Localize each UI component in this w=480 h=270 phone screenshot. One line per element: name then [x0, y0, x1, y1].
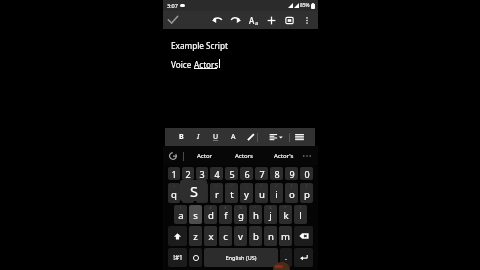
staticText: r: [215, 188, 219, 201]
button[interactable]: @: [189, 205, 202, 224]
staticText: %: [239, 205, 243, 211]
staticText: English (US): [225, 254, 257, 262]
button[interactable]: ^: [249, 205, 262, 224]
button[interactable]: n: [264, 226, 277, 246]
button[interactable]: 5: [225, 167, 238, 180]
staticText: b: [253, 230, 259, 243]
button[interactable]: _: [240, 183, 253, 203]
button[interactable]: x: [204, 226, 217, 246]
staticText: p: [304, 188, 310, 201]
staticText: =: [215, 183, 218, 189]
button[interactable]: z: [189, 226, 202, 246]
staticText: g: [238, 209, 244, 222]
button[interactable]: &: [264, 205, 277, 224]
button[interactable]: Add: [265, 14, 278, 27]
staticText: A: [249, 15, 255, 26]
staticText: B: [179, 132, 184, 142]
button[interactable]: Bullet list: [294, 131, 305, 143]
staticText: d: [208, 209, 214, 222]
staticText: 0: [304, 168, 310, 180]
staticText: f: [224, 209, 228, 222]
staticText: *: [284, 205, 287, 211]
button[interactable]: /: [225, 183, 238, 203]
button[interactable]: U: [210, 130, 221, 144]
button[interactable]: $: [219, 205, 232, 224]
button[interactable]: 9: [285, 167, 298, 180]
button[interactable]: Save: [166, 13, 180, 27]
button[interactable]: More suggestions: [300, 146, 314, 166]
button[interactable]: !: [174, 205, 187, 224]
button[interactable]: m: [279, 226, 292, 246]
staticText: o: [289, 188, 295, 201]
button[interactable]: Google: [163, 146, 183, 166]
button[interactable]: Redo: [229, 14, 242, 27]
button[interactable]: Enter: [294, 248, 313, 267]
button[interactable]: 2: [182, 167, 194, 180]
button[interactable]: Actors: [224, 146, 264, 166]
button[interactable]: ×: [182, 183, 194, 203]
staticText: Actors: [194, 59, 219, 70]
button[interactable]: I: [193, 130, 204, 144]
button[interactable]: 7: [255, 167, 268, 180]
button[interactable]: 1: [168, 167, 180, 180]
button[interactable]: >: [270, 183, 283, 203]
staticText: t: [230, 188, 234, 201]
button[interactable]: More options: [302, 14, 312, 27]
button[interactable]: b: [249, 226, 262, 246]
staticText: 9: [289, 168, 295, 180]
staticText: u: [259, 188, 265, 201]
button[interactable]: 4: [210, 167, 223, 180]
button[interactable]: B: [176, 130, 187, 144]
button[interactable]: 8: [270, 167, 283, 180]
button[interactable]: Insert image: [283, 14, 296, 27]
staticText: i: [275, 188, 278, 201]
staticText: a: [178, 209, 184, 222]
button[interactable]: A: [228, 130, 239, 144]
staticText: k: [283, 209, 289, 222]
button[interactable]: Paragraph style: [269, 131, 284, 143]
button[interactable]: c: [219, 226, 232, 246]
button[interactable]: #: [204, 205, 217, 224]
staticText: ]: [306, 183, 308, 189]
staticText: U: [213, 132, 219, 142]
staticText: 85%: [300, 2, 310, 9]
button[interactable]: Backspace: [294, 226, 313, 246]
button[interactable]: Emoji: [189, 248, 202, 267]
staticText: c: [223, 230, 228, 243]
button[interactable]: %: [234, 205, 247, 224]
button[interactable]: English (US): [204, 248, 278, 267]
button[interactable]: Shift: [168, 226, 187, 246]
staticText: /: [231, 183, 233, 189]
staticText: #: [209, 205, 212, 211]
button[interactable]: =: [210, 183, 223, 203]
staticText: A: [231, 132, 236, 142]
button[interactable]: ]: [300, 183, 313, 203]
staticText: Voice: [171, 59, 194, 70]
button[interactable]: 0: [300, 167, 313, 180]
button[interactable]: *: [279, 205, 292, 224]
button[interactable]: v: [234, 226, 247, 246]
staticText: l: [299, 209, 302, 222]
staticText: q: [171, 188, 177, 201]
staticText: s: [193, 209, 198, 222]
button[interactable]: !#1: [168, 248, 187, 267]
staticText: $: [224, 205, 227, 211]
button[interactable]: 6: [240, 167, 253, 180]
button[interactable]: [: [285, 183, 298, 203]
button[interactable]: Actor: [184, 146, 224, 166]
button[interactable]: Highlight: [245, 131, 257, 143]
button[interactable]: Text formatting: [247, 14, 260, 27]
button[interactable]: Undo: [211, 14, 224, 27]
button[interactable]: (: [294, 205, 307, 224]
staticText: 7: [259, 168, 265, 180]
button[interactable]: Actor's: [264, 146, 304, 166]
button[interactable]: <: [255, 183, 268, 203]
button[interactable]: .: [280, 248, 292, 267]
staticText: !: [180, 205, 182, 211]
button[interactable]: +: [168, 183, 180, 203]
button[interactable]: ÷: [196, 183, 208, 203]
staticText: 2: [185, 168, 191, 180]
button[interactable]: 3: [196, 167, 208, 180]
